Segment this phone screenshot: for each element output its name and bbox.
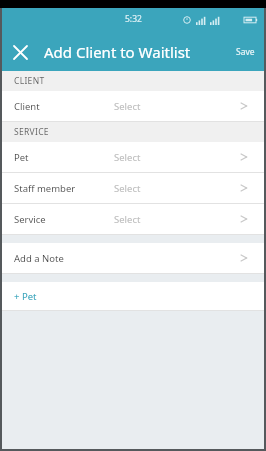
- staticText: Save: [236, 46, 255, 58]
- staticText: 5:32: [125, 13, 142, 25]
- staticText: SERVICE: [14, 126, 49, 138]
- staticText: Staff member: [14, 182, 114, 195]
- button[interactable]: Service: [2, 204, 264, 234]
- staticText: Select: [114, 182, 238, 195]
- staticText: CLIENT: [14, 75, 45, 87]
- button[interactable]: Staff member: [2, 173, 264, 203]
- staticText: Add Client to Waitlist: [44, 42, 227, 62]
- staticText: Client: [14, 100, 114, 113]
- button[interactable]: Pet: [2, 142, 264, 172]
- staticText: Select: [114, 100, 238, 113]
- staticText: Add a Note: [14, 252, 114, 265]
- button[interactable]: + Pet: [2, 282, 264, 310]
- staticText: Select: [114, 213, 238, 226]
- staticText: Pet: [14, 151, 114, 164]
- button[interactable]: Close: [2, 34, 38, 70]
- button[interactable]: Save: [227, 40, 264, 64]
- staticText: + Pet: [14, 290, 37, 303]
- staticText: Select: [114, 151, 238, 164]
- staticText: Service: [14, 213, 114, 226]
- button[interactable]: Client: [2, 91, 264, 121]
- button[interactable]: Add a Note: [2, 243, 264, 273]
